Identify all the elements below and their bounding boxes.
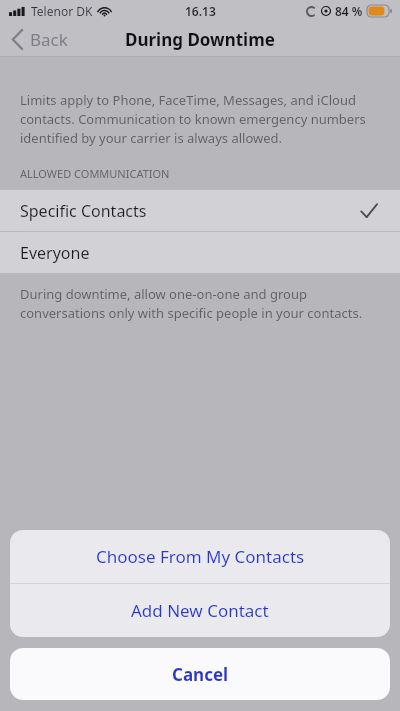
staticText: Limits apply to Phone, FaceTime, Message… (20, 91, 380, 147)
staticText: Cancel (172, 663, 229, 686)
button[interactable]: Specific Contacts (0, 190, 400, 231)
staticText: During downtime, allow one-on-one and gr… (20, 285, 380, 322)
staticText: ALLOWED COMMUNICATION (20, 166, 170, 181)
button[interactable]: Back (12, 24, 76, 55)
staticText: During Downtime (125, 28, 275, 51)
staticText: Add New Contact (131, 599, 269, 622)
button[interactable]: Choose From My Contacts (10, 530, 390, 583)
staticText: 84 % (335, 3, 363, 19)
staticText: Back (30, 28, 68, 51)
staticText: 16.13 (185, 3, 216, 19)
button[interactable]: Add New Contact (10, 584, 390, 637)
staticText: Telenor DK (31, 3, 93, 19)
staticText: Specific Contacts (20, 200, 147, 222)
button[interactable]: Everyone (0, 232, 400, 273)
staticText: Everyone (20, 242, 90, 264)
staticText: Choose From My Contacts (96, 545, 305, 568)
button[interactable]: Cancel (10, 648, 390, 700)
